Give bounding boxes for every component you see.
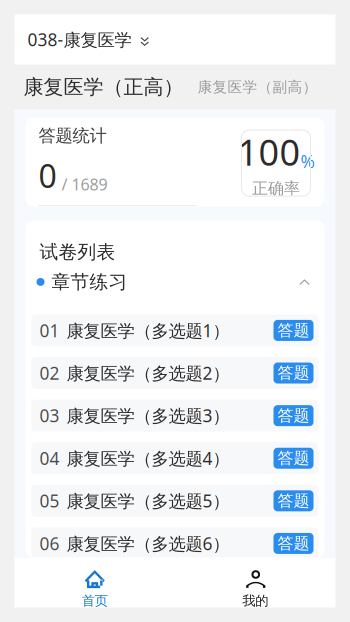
button[interactable]: 01 xyxy=(31,314,318,346)
button[interactable]: 02 xyxy=(31,357,318,389)
button[interactable]: 03 xyxy=(31,400,318,432)
staticText: 康复医学（多选题7） xyxy=(66,574,229,597)
staticText: 正确率 xyxy=(252,179,300,198)
staticText: 康复医学（多选题2） xyxy=(66,361,229,384)
staticText: 04 xyxy=(39,447,59,470)
staticText: 首页 xyxy=(82,592,108,609)
staticText: 康复医学（正高） xyxy=(23,75,183,99)
staticText: 答题 xyxy=(277,363,309,383)
button[interactable]: 05 xyxy=(31,485,318,517)
staticText: 答题 xyxy=(277,406,309,425)
staticText: 答题 xyxy=(277,448,309,468)
button[interactable]: 康复医学（副高） xyxy=(183,64,317,109)
staticText: / 1689 xyxy=(61,174,107,195)
staticText: 答题 xyxy=(277,321,309,340)
staticText: 我的 xyxy=(242,592,268,609)
staticText: 康复医学（多选题1） xyxy=(66,319,229,342)
staticText: 100 xyxy=(237,128,300,176)
staticText: 答题 xyxy=(277,534,309,553)
staticText: 康复医学（副高） xyxy=(197,78,317,96)
staticText: 03 xyxy=(39,404,59,427)
button[interactable]: 首页 xyxy=(14,557,175,607)
staticText: 康复医学（多选题5） xyxy=(66,489,229,512)
staticText: % xyxy=(300,150,314,173)
staticText: 038-康复医学 xyxy=(27,28,131,51)
staticText: 答题 xyxy=(277,491,309,511)
staticText: 05 xyxy=(39,489,59,512)
button[interactable]: 04 xyxy=(31,442,318,474)
staticText: 答题统计 xyxy=(38,125,106,146)
button[interactable]: 07 xyxy=(31,570,318,602)
staticText: 章节练习 xyxy=(51,270,127,293)
staticText: 康复医学（多选题6） xyxy=(66,532,229,555)
button[interactable]: 我的 xyxy=(175,557,335,607)
staticText: 试卷列表 xyxy=(39,240,115,263)
staticText: 康复医学（多选题4） xyxy=(66,447,229,470)
staticText: 02 xyxy=(39,361,59,384)
staticText: 0 xyxy=(38,154,56,197)
button[interactable]: 06 xyxy=(31,527,318,559)
staticText: 康复医学（多选题3） xyxy=(66,404,229,427)
staticText: 06 xyxy=(39,532,59,555)
button[interactable]: 康复医学（正高） xyxy=(23,64,183,109)
staticText: 01 xyxy=(39,319,59,342)
button[interactable]: 章节练习 xyxy=(25,263,324,300)
